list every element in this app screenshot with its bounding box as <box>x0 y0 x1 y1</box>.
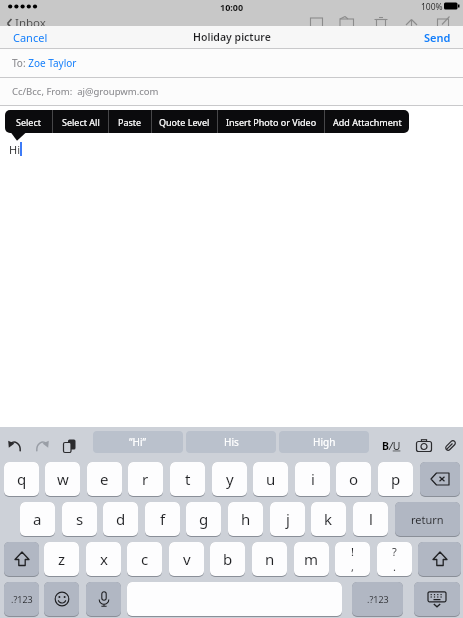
staticText: Select All <box>62 116 100 128</box>
button[interactable]: b <box>210 542 245 576</box>
staticText: l <box>369 509 373 529</box>
button[interactable]: q <box>4 462 39 496</box>
staticText: b <box>223 549 233 569</box>
staticText: a <box>33 509 42 529</box>
button[interactable]: e <box>87 462 122 496</box>
staticText: j <box>286 509 290 529</box>
button[interactable] <box>420 462 460 496</box>
staticText: k <box>324 509 333 529</box>
button[interactable]: ? <box>377 542 412 576</box>
button[interactable]: High <box>279 431 369 453</box>
button[interactable] <box>7 437 23 453</box>
button[interactable]: return <box>395 502 460 536</box>
button[interactable]: j <box>270 502 305 536</box>
staticText: c <box>141 549 149 569</box>
staticText: Insert Photo or Video <box>226 116 317 128</box>
button[interactable]: Send <box>416 26 463 48</box>
staticText: ! <box>351 544 354 559</box>
button[interactable] <box>415 437 433 453</box>
button[interactable]: c <box>127 542 162 576</box>
staticText: d <box>116 509 126 529</box>
button[interactable] <box>34 437 50 453</box>
staticText: Inbox <box>15 15 46 26</box>
button[interactable]: z <box>44 542 79 576</box>
staticText: Quote Level <box>159 116 210 128</box>
staticText: .?123 <box>11 593 33 605</box>
button[interactable]: k <box>311 502 346 536</box>
button[interactable]: .?123 <box>352 582 403 616</box>
button[interactable] <box>127 582 342 616</box>
button[interactable]: B/U <box>378 435 404 457</box>
button[interactable]: r <box>128 462 163 496</box>
button[interactable]: g <box>186 502 221 536</box>
staticText: .?123 <box>367 593 389 605</box>
button[interactable]: n <box>252 542 287 576</box>
staticText: return <box>411 512 444 527</box>
staticText: e <box>100 469 109 489</box>
staticText: 100% <box>421 1 443 13</box>
staticText: i <box>311 469 315 489</box>
button[interactable] <box>61 437 79 453</box>
button[interactable]: “Hi” <box>93 431 183 453</box>
staticText: y <box>226 469 234 489</box>
button[interactable] <box>442 437 458 453</box>
button[interactable]: Cancel <box>0 26 56 48</box>
button[interactable]: Select All <box>53 110 108 133</box>
button[interactable]: Insert Photo or Video <box>218 110 324 133</box>
button[interactable]: Add Attachment <box>325 110 409 133</box>
button[interactable]: u <box>253 462 288 496</box>
button[interactable]: d <box>103 502 138 536</box>
staticText: Hi <box>9 142 20 157</box>
staticText: Select <box>16 116 41 128</box>
button[interactable] <box>418 542 461 576</box>
button[interactable]: t <box>170 462 205 496</box>
button[interactable]: x <box>86 542 121 576</box>
staticText: Cancel <box>13 30 48 45</box>
button[interactable]: Cc/Bcc, From: aj@groupwm.com <box>0 78 463 105</box>
staticText: His <box>224 435 239 449</box>
staticText: r <box>142 469 149 489</box>
staticText: Cc/Bcc, From: aj@groupwm.com <box>12 85 159 98</box>
button[interactable]: o <box>336 462 371 496</box>
button[interactable] <box>414 582 460 616</box>
button[interactable]: i <box>295 462 330 496</box>
staticText: z <box>58 549 66 569</box>
staticText: Holiday picture <box>193 30 271 44</box>
staticText: “Hi” <box>129 435 147 449</box>
button[interactable]: Paste <box>109 110 151 133</box>
button[interactable]: His <box>186 431 276 453</box>
button[interactable]: y <box>212 462 247 496</box>
staticText: w <box>57 469 69 489</box>
staticText: . <box>393 559 396 574</box>
button[interactable]: Quote Level <box>152 110 217 133</box>
staticText: Send <box>424 30 451 45</box>
button[interactable] <box>4 542 39 576</box>
staticText: q <box>17 469 27 489</box>
button[interactable]: v <box>169 542 204 576</box>
button[interactable]: f <box>145 502 180 536</box>
staticText: o <box>349 469 359 489</box>
staticText: p <box>391 469 401 489</box>
button[interactable]: .?123 <box>4 582 39 616</box>
button[interactable]: Select <box>5 110 52 133</box>
button[interactable]: s <box>62 502 97 536</box>
button[interactable]: To: Zoe Taylor <box>0 49 463 77</box>
button[interactable]: h <box>228 502 263 536</box>
staticText: ? <box>392 544 397 559</box>
button[interactable] <box>86 582 121 616</box>
staticText: h <box>241 509 251 529</box>
staticText: v <box>183 549 191 569</box>
staticText: s <box>76 509 84 529</box>
button[interactable]: ! <box>335 542 370 576</box>
button[interactable]: m <box>294 542 329 576</box>
button[interactable] <box>44 582 79 616</box>
staticText: Add Attachment <box>333 116 402 128</box>
staticText: High <box>313 435 336 449</box>
button[interactable]: p <box>378 462 413 496</box>
staticText: x <box>100 549 108 569</box>
staticText: m <box>304 549 319 569</box>
button[interactable]: a <box>20 502 55 536</box>
button[interactable]: w <box>45 462 80 496</box>
button[interactable]: l <box>353 502 388 536</box>
staticText: Paste <box>118 116 142 128</box>
